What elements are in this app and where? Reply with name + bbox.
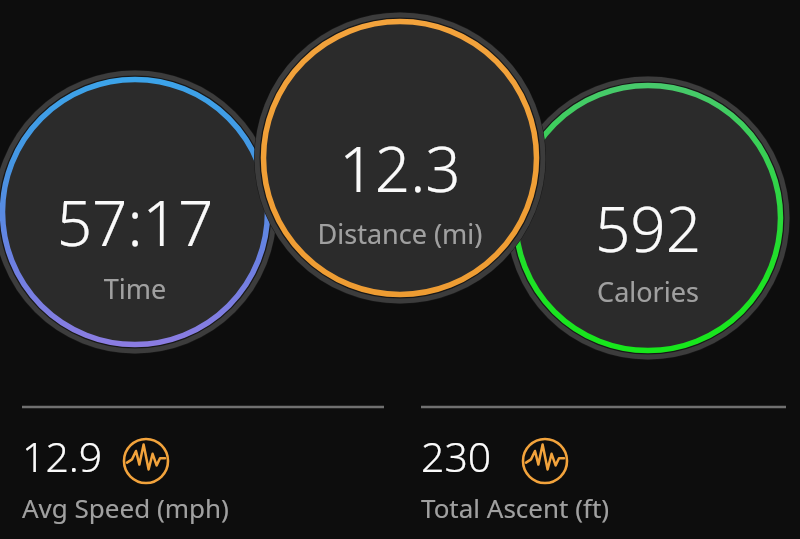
- button[interactable]: Total Ascent (ft): [421, 428, 786, 532]
- button[interactable]: Avg Speed (mph): [22, 428, 387, 532]
- button[interactable]: 592: [503, 176, 793, 315]
- staticText: Time: [0, 270, 280, 307]
- staticText: 57:17: [0, 180, 280, 264]
- button[interactable]: 57:17: [0, 170, 280, 312]
- staticText: 12.9: [22, 428, 103, 484]
- staticText: Avg Speed (mph): [22, 490, 229, 525]
- staticText: 592: [503, 186, 793, 270]
- staticText: Calories: [503, 273, 793, 310]
- staticText: 12.3: [255, 126, 545, 210]
- button[interactable]: 12.3: [255, 116, 545, 257]
- staticText: Total Ascent (ft): [421, 490, 610, 525]
- staticText: Distance (mi): [255, 215, 545, 252]
- staticText: 230: [421, 428, 492, 484]
